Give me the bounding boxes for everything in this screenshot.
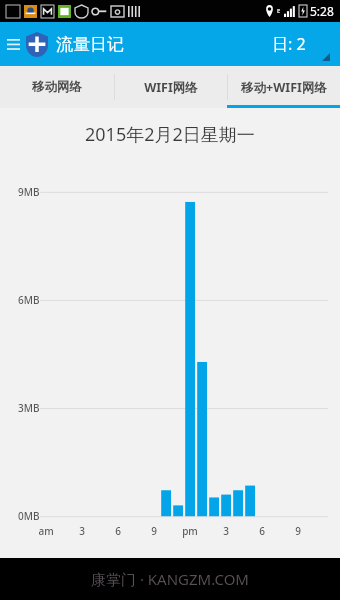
staticText: 6 [259,524,265,538]
staticText: 3 [79,524,85,538]
staticText: 9 [151,524,157,538]
button[interactable]: 日: 2 [260,27,330,61]
staticText: 0MB [18,509,40,523]
staticText: am [38,524,54,538]
staticText: 流量日记 [56,34,124,55]
staticText: 康掌门 · KANGZM.COM [91,569,249,589]
staticText: 2015年2月2日星期一 [85,122,255,147]
staticText: 日: 2 [272,33,306,55]
staticText: 移动网络 [32,79,82,95]
staticText: pm [182,524,198,538]
staticText: E [277,7,281,15]
staticText: 3MB [18,401,40,415]
staticText: 3 [223,524,229,538]
staticText: 6MB [18,293,40,307]
button[interactable]: 移动网络 [0,66,114,108]
staticText: WIFI网络 [144,79,198,96]
staticText: 9MB [18,185,40,199]
button[interactable]: WIFI网络 [114,66,227,108]
button[interactable]: Menu [2,22,24,66]
staticText: 6 [115,524,121,538]
staticText: 5:28 [310,3,334,19]
button[interactable]: 移动+WIFI网络 [227,66,340,108]
staticText: 移动+WIFI网络 [241,79,327,96]
staticText: 9 [295,524,301,538]
